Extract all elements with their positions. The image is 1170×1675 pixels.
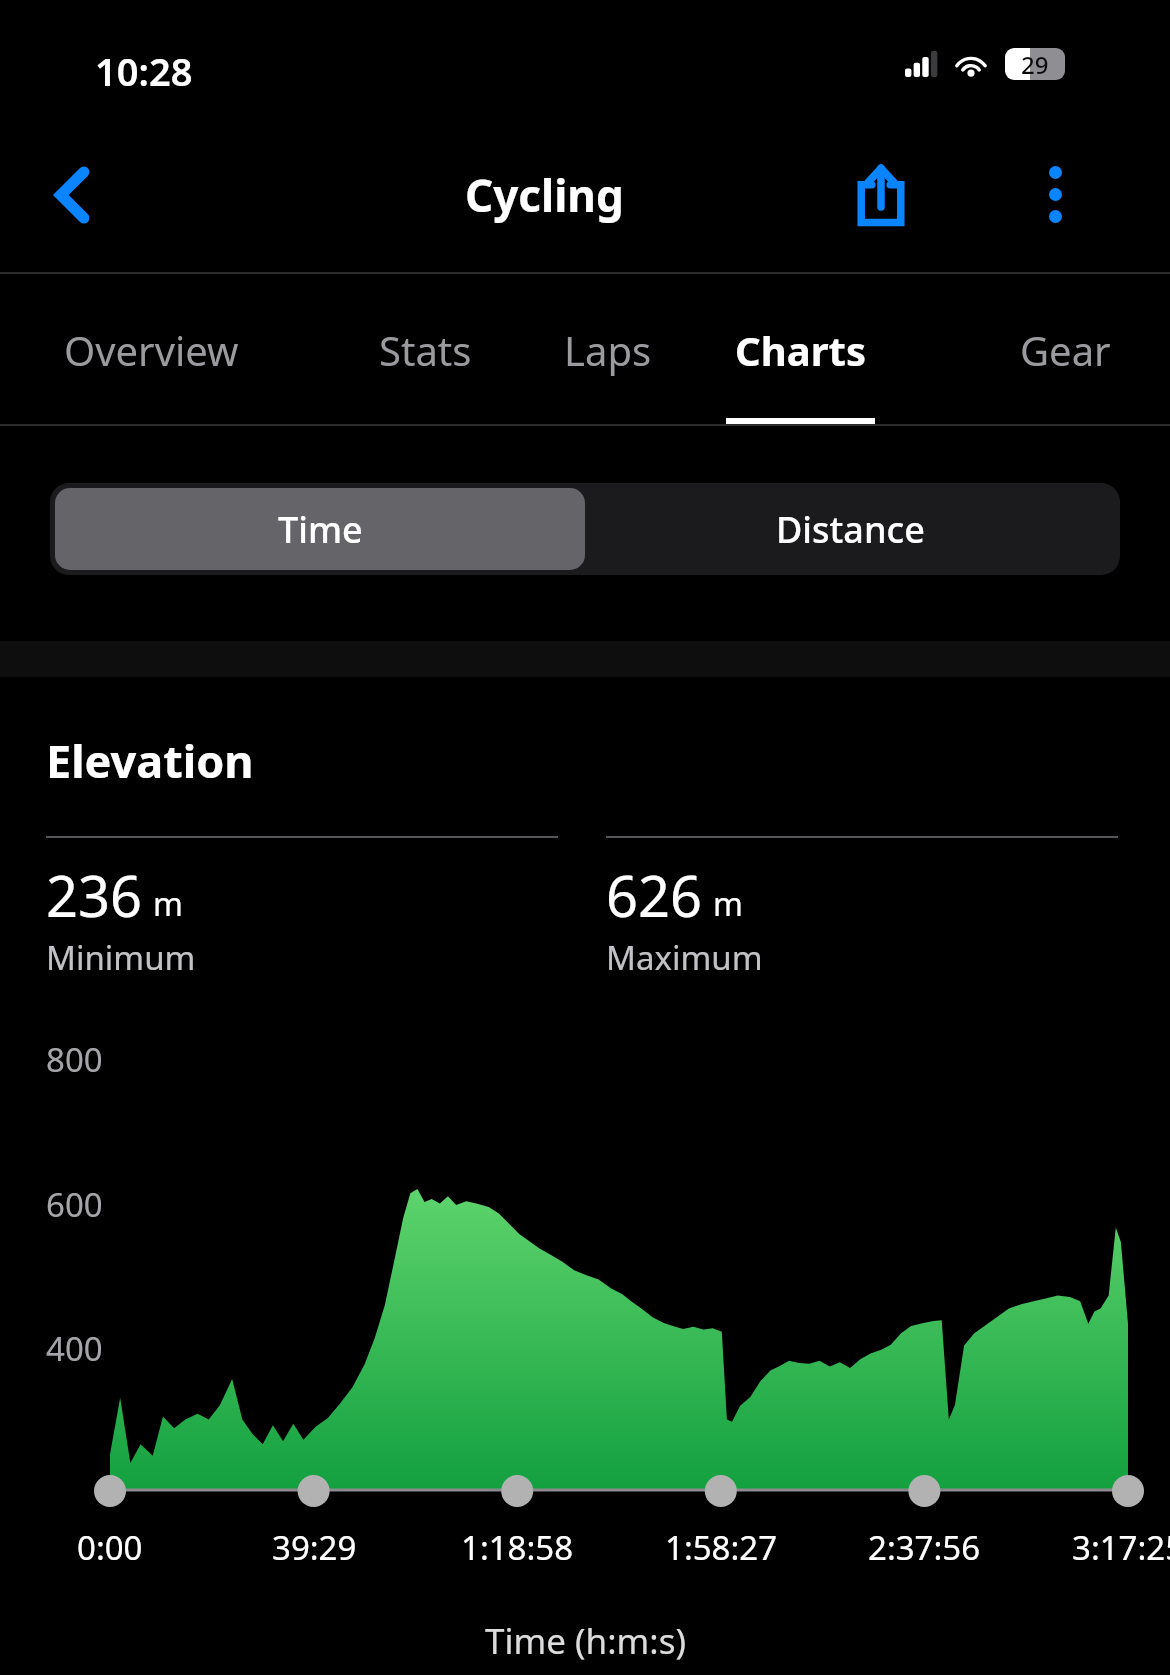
staticText: 626 xyxy=(606,857,703,933)
staticText: 800 xyxy=(46,1037,103,1082)
staticText: 3:17:25 xyxy=(1072,1525,1170,1570)
button[interactable]: Share xyxy=(828,142,933,247)
staticText: 39:29 xyxy=(272,1525,357,1570)
staticText: Overview xyxy=(64,323,239,377)
staticText: Time xyxy=(278,505,363,554)
button[interactable]: Distance xyxy=(585,488,1115,570)
staticText: 600 xyxy=(46,1182,103,1227)
staticText: Charts xyxy=(735,323,866,377)
button[interactable]: Laps xyxy=(516,276,700,424)
staticText: Distance xyxy=(776,505,925,554)
staticText: Gear xyxy=(1020,323,1111,377)
staticText: 0:00 xyxy=(77,1525,143,1570)
staticText: Cycling xyxy=(465,165,624,225)
button[interactable]: Gear xyxy=(976,276,1154,424)
button[interactable]: Stats xyxy=(321,276,529,424)
button[interactable]: Time xyxy=(55,488,585,570)
button[interactable]: Back xyxy=(18,140,128,250)
staticText: Minimum xyxy=(46,935,196,980)
staticText: Elevation xyxy=(46,730,254,791)
staticText: 10:28 xyxy=(95,45,193,97)
button[interactable]: Charts xyxy=(704,276,897,424)
staticText: Stats xyxy=(379,323,472,377)
staticText: 29 xyxy=(1021,48,1049,80)
staticText: 2:37:56 xyxy=(868,1525,981,1570)
staticText: m xyxy=(153,882,183,926)
button[interactable]: More options xyxy=(1000,142,1110,247)
staticText: Time (h:m:s) xyxy=(485,1617,686,1665)
staticText: Maximum xyxy=(606,935,763,980)
staticText: m xyxy=(713,882,743,926)
staticText: 1:18:58 xyxy=(461,1525,574,1570)
staticText: Laps xyxy=(564,323,652,377)
staticText: 400 xyxy=(46,1326,103,1371)
button[interactable]: Overview xyxy=(26,276,277,424)
staticText: 1:58:27 xyxy=(665,1525,778,1570)
staticText: 236 xyxy=(46,857,143,933)
